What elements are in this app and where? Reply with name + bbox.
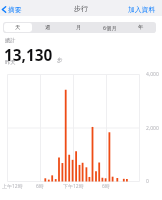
staticText: 總計 [5, 37, 16, 44]
staticText: 天 [15, 24, 21, 31]
staticText: 4,000 [146, 71, 159, 78]
staticText: 13,130 [4, 45, 53, 66]
staticText: 6時 [36, 183, 44, 190]
button[interactable]: 天 [4, 23, 32, 32]
staticText: 0 [146, 178, 149, 185]
staticText: 摘要 [8, 5, 22, 14]
button[interactable]: 年 [126, 23, 155, 32]
staticText: 週 [45, 24, 51, 31]
staticText: 步 [57, 57, 63, 64]
staticText: 加入資料 [128, 5, 156, 14]
button[interactable]: 6個月 [95, 23, 124, 32]
staticText: 下午12時 [63, 183, 84, 190]
button[interactable]: 月 [64, 23, 93, 32]
button[interactable]: 加入資料 [128, 5, 156, 14]
staticText: 年 [138, 24, 144, 31]
staticText: 月 [76, 24, 82, 31]
button[interactable]: 週 [34, 23, 62, 32]
staticText: 6時 [102, 183, 110, 190]
staticText: 2,000 [146, 125, 159, 132]
staticText: 上午12時 [2, 183, 23, 190]
button[interactable]: 摘要 [1, 5, 22, 14]
staticText: 昨天 [5, 59, 16, 66]
staticText: 步行 [74, 4, 88, 13]
staticText: 6個月 [103, 24, 117, 31]
